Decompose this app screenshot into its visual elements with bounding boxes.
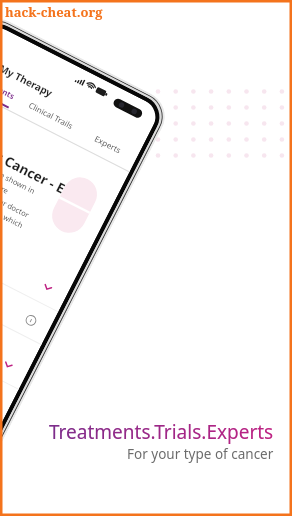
staticText: Clinical Trails [27, 99, 76, 131]
staticText: typically used. Your doctor [0, 169, 31, 220]
staticText: For your type of cancer [127, 445, 274, 463]
staticText: Treatments.Trials.Experts [49, 419, 274, 445]
staticText: Treatments are shown in [0, 147, 38, 196]
staticText: the order they are [0, 158, 11, 196]
other: More information [24, 313, 38, 328]
button[interactable]: Clinical Trails [17, 96, 82, 140]
staticText: Experts [93, 133, 124, 156]
staticText: My Therapy [0, 61, 56, 100]
staticText: cases, several are used [0, 201, 4, 247]
staticText: Breast Cancer - Early [0, 130, 92, 210]
staticText: Treatments [0, 71, 17, 101]
button[interactable]: Targeted therapy [0, 304, 18, 422]
staticText: will help you decide which [0, 179, 25, 230]
button[interactable]: Treatments [0, 66, 25, 112]
button[interactable]: Chemotherapy [0, 227, 57, 344]
button[interactable]: Experts [74, 125, 139, 169]
button[interactable]: Hormone therapy [0, 271, 34, 389]
staticText: hack-cheat.org [5, 3, 103, 21]
button[interactable]: Surgery [0, 194, 74, 311]
